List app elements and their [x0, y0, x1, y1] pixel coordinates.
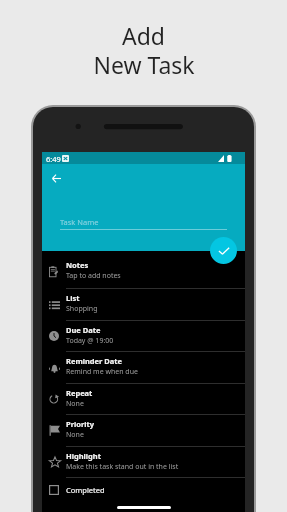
button[interactable]: Highlight — [42, 447, 245, 477]
button[interactable]: Repeat — [42, 384, 245, 414]
staticText: New Task — [93, 49, 195, 80]
staticText: Completed — [66, 485, 105, 495]
button[interactable]: Save task — [210, 237, 237, 264]
button[interactable]: Completed — [42, 478, 245, 509]
staticText: Task Name — [60, 217, 99, 227]
staticText: Add — [122, 20, 165, 51]
button[interactable]: Back — [46, 168, 66, 188]
staticText: 6:49 — [46, 154, 61, 164]
staticText: Make this task stand out in the list — [66, 462, 179, 472]
staticText: Notes — [66, 260, 89, 270]
staticText: Repeat — [66, 388, 93, 398]
button[interactable]: Notes — [42, 255, 245, 288]
staticText: List — [66, 293, 80, 303]
staticText: Tap to add notes — [66, 271, 121, 281]
staticText: None — [66, 399, 84, 409]
staticText: None — [66, 430, 84, 440]
staticText: Today @ 19:00 — [66, 336, 114, 346]
staticText: Priority — [66, 419, 95, 429]
button[interactable]: List — [42, 289, 245, 320]
staticText: Highlight — [66, 451, 101, 461]
button[interactable]: Due Date — [42, 321, 245, 351]
button[interactable]: Reminder Date — [42, 352, 245, 383]
staticText: Remind me when due — [66, 367, 138, 377]
staticText: Shopping — [66, 304, 98, 314]
staticText: Due Date — [66, 325, 101, 335]
button[interactable]: Task Name — [60, 217, 227, 230]
staticText: Reminder Date — [66, 356, 123, 366]
button[interactable]: Priority — [42, 415, 245, 446]
